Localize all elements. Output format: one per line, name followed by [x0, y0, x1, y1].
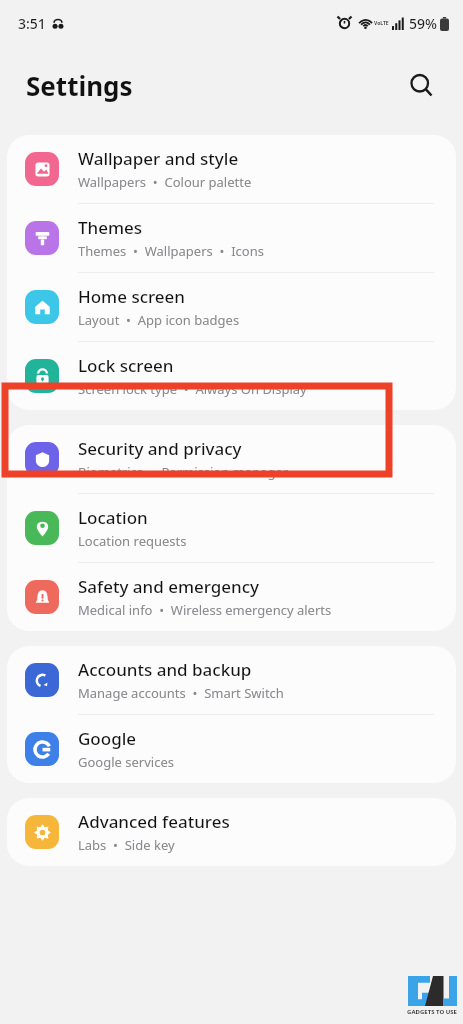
- staticText: Home screen: [78, 285, 186, 308]
- staticText: Medical info • Wireless emergency alerts: [78, 601, 332, 619]
- staticText: Wallpaper and style: [78, 147, 239, 170]
- button[interactable]: Themes: [7, 204, 456, 272]
- staticText: GADGETS TO USE: [407, 1008, 457, 1016]
- button[interactable]: Safety and emergency: [7, 563, 456, 631]
- staticText: Layout • App icon badges: [78, 311, 240, 329]
- staticText: Themes: [78, 216, 143, 239]
- button[interactable]: Search: [399, 63, 443, 107]
- staticText: Screen lock type • Always On Display: [78, 380, 307, 398]
- button[interactable]: Advanced features: [7, 798, 456, 866]
- staticText: Manage accounts • Smart Switch: [78, 684, 284, 702]
- staticText: Google services: [78, 753, 174, 771]
- staticText: Labs • Side key: [78, 836, 175, 854]
- staticText: Settings: [26, 68, 133, 103]
- staticText: Safety and emergency: [78, 575, 260, 598]
- staticText: 3:51: [18, 14, 46, 33]
- button[interactable]: Security and privacy: [7, 425, 456, 493]
- staticText: Wallpapers • Colour palette: [78, 173, 252, 191]
- staticText: Accounts and backup: [78, 658, 252, 681]
- staticText: 59%: [409, 14, 437, 33]
- staticText: VoLTE: [374, 20, 389, 27]
- button[interactable]: Home screen: [7, 273, 456, 341]
- staticText: Lock screen: [78, 354, 174, 377]
- staticText: Advanced features: [78, 810, 230, 833]
- button[interactable]: Lock screen: [7, 342, 456, 410]
- staticText: Biometrics • Permission manager: [78, 463, 289, 481]
- staticText: Location requests: [78, 532, 187, 550]
- button[interactable]: Google: [7, 715, 456, 783]
- button[interactable]: Location: [7, 494, 456, 562]
- button[interactable]: Wallpaper and style: [7, 135, 456, 203]
- staticText: Themes • Wallpapers • Icons: [78, 242, 264, 260]
- staticText: Security and privacy: [78, 437, 242, 460]
- staticText: Google: [78, 727, 137, 750]
- button[interactable]: Accounts and backup: [7, 646, 456, 714]
- staticText: Location: [78, 506, 148, 529]
